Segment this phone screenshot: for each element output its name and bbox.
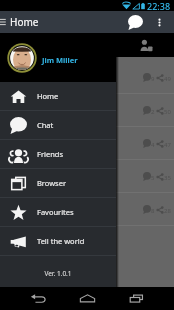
button[interactable]: Jim Miller: [0, 33, 116, 82]
button[interactable]: Chat: [0, 111, 116, 139]
button[interactable]: Messages: [128, 15, 143, 30]
button[interactable]: Back: [30, 290, 47, 307]
staticText: 35: [164, 174, 171, 182]
staticText: Ver. 1.0.1: [0, 269, 116, 278]
staticText: 50: [164, 108, 171, 116]
staticText: 28: [164, 207, 171, 215]
button[interactable]: Favourites: [0, 198, 116, 226]
button[interactable]: 2: [0, 94, 174, 127]
staticText: Home: [37, 91, 59, 101]
button[interactable]: Open navigation drawer: [0, 14, 8, 30]
button[interactable]: Recent apps: [128, 290, 145, 307]
staticText: 22:38: [147, 0, 171, 11]
staticText: Favourites: [37, 207, 74, 217]
staticText: 47: [164, 141, 171, 149]
button[interactable]: Friends: [0, 140, 116, 168]
staticText: 2: [151, 108, 155, 116]
staticText: 5: [151, 174, 155, 182]
button[interactable]: Tell the world: [0, 227, 116, 255]
button[interactable]: People tab: [139, 38, 154, 53]
staticText: Jim Miller: [42, 55, 78, 65]
staticText: 4: [151, 141, 155, 149]
button[interactable]: 8: [0, 193, 174, 226]
staticText: 9: [151, 75, 155, 83]
staticText: 8: [151, 207, 155, 215]
staticText: Chat: [37, 120, 54, 130]
staticText: Browser: [37, 178, 67, 188]
button[interactable]: More options: [153, 16, 166, 29]
button[interactable]: 4: [0, 127, 174, 160]
button[interactable]: Home: [79, 290, 96, 307]
staticText: 49: [164, 75, 171, 83]
staticText: Friends: [37, 149, 63, 159]
button[interactable]: 9: [0, 61, 174, 94]
staticText: Home: [10, 15, 39, 29]
button[interactable]: Browser: [0, 169, 116, 197]
button[interactable]: 5: [0, 160, 174, 193]
button[interactable]: Home: [0, 82, 116, 110]
staticText: Tell the world: [37, 236, 85, 246]
